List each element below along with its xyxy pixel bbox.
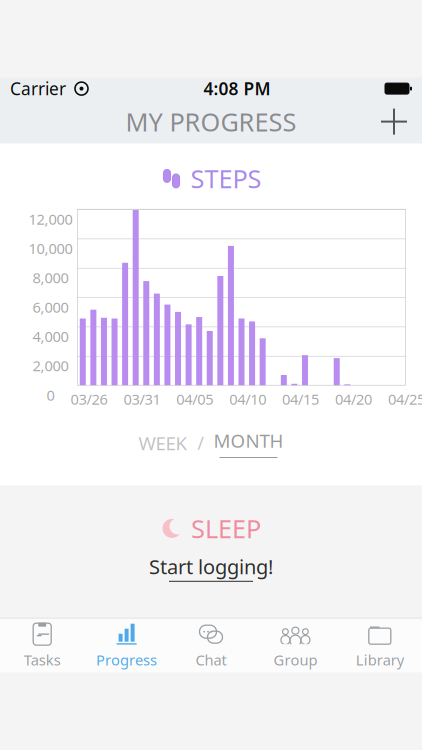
button[interactable]: Add: [372, 100, 416, 144]
staticText: MY PROGRESS: [125, 105, 296, 138]
staticText: 8,000: [32, 268, 68, 287]
staticText: WEEK: [138, 431, 187, 455]
button[interactable]: Group: [253, 618, 338, 672]
staticText: Library: [356, 650, 404, 670]
staticText: MONTH: [213, 428, 283, 453]
staticText: 04/05: [176, 389, 213, 409]
staticText: 04/25: [388, 389, 422, 409]
staticText: Group: [273, 650, 317, 670]
staticText: Carrier: [10, 77, 66, 100]
staticText: /: [197, 432, 203, 455]
staticText: Chat: [195, 650, 226, 670]
staticText: 04/20: [335, 389, 372, 409]
staticText: 04/15: [282, 389, 319, 409]
staticText: 4:08 PM: [203, 77, 270, 100]
staticText: 03/31: [123, 389, 160, 409]
staticText: Progress: [96, 650, 157, 670]
staticText: 03/26: [70, 389, 107, 409]
button[interactable]: Library: [338, 618, 422, 672]
staticText: 10,000: [28, 239, 72, 258]
staticText: STEPS: [190, 162, 261, 195]
staticText: 0: [46, 385, 54, 405]
button[interactable]: Tasks: [0, 618, 84, 672]
staticText: 04/10: [229, 389, 266, 409]
button[interactable]: Start logging!: [149, 553, 273, 582]
staticText: 2,000: [32, 356, 68, 375]
staticText: Start logging!: [149, 553, 273, 580]
staticText: 4,000: [32, 327, 68, 346]
button[interactable]: Progress: [84, 618, 169, 672]
staticText: 12,000: [28, 209, 72, 229]
staticText: SLEEP: [191, 512, 261, 545]
staticText: Tasks: [24, 650, 61, 670]
button[interactable]: MONTH: [213, 428, 283, 458]
staticText: 6,000: [32, 297, 68, 317]
button[interactable]: WEEK: [138, 427, 187, 459]
button[interactable]: Chat: [169, 618, 253, 672]
